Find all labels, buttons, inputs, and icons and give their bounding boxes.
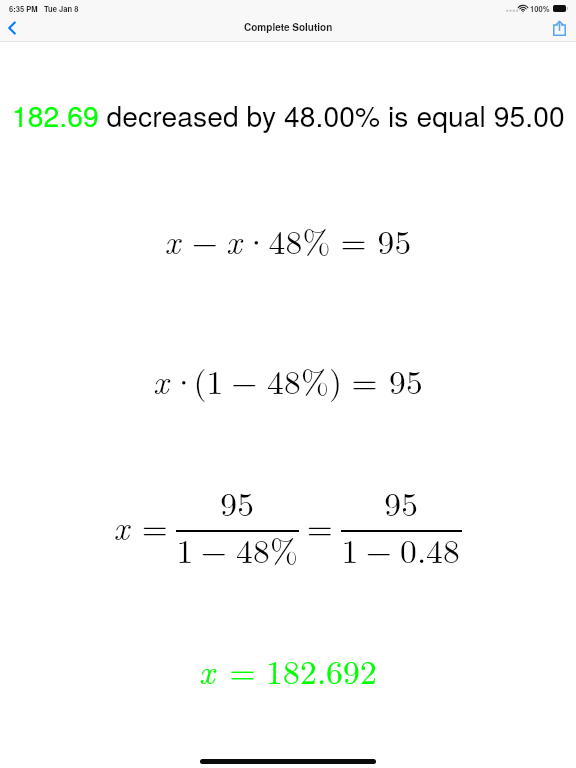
button[interactable]: Back [0,14,24,42]
staticText: 100% [530,3,550,14]
staticText: Tue Jan 8 [44,3,79,14]
staticText: Complete Solution [244,20,333,34]
button[interactable]: Share [550,14,576,42]
staticText: 6:35 PM [9,3,38,14]
staticText: 182.69 decreased by 48.00% is equal 95.0… [12,95,576,135]
